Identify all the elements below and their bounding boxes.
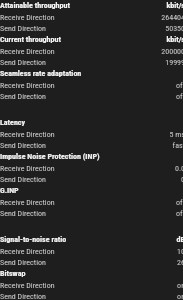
staticText: 0.0 [174, 164, 183, 173]
staticText: Bitswap [0, 269, 26, 278]
staticText: Send Direction [0, 175, 46, 184]
button[interactable]: Receive Direction [0, 12, 183, 23]
button[interactable]: Send Direction [0, 140, 183, 151]
staticText: Send Direction [0, 209, 46, 218]
staticText: Attainable throughput [0, 1, 70, 10]
staticText: on [177, 281, 183, 290]
button[interactable]: Receive Direction [0, 197, 183, 208]
button[interactable]: Receive Direction [0, 280, 183, 291]
button[interactable]: Receive Direction [0, 46, 183, 57]
button[interactable]: Receive Direction [0, 80, 183, 91]
staticText: Current throughput [0, 35, 61, 44]
staticText: 26 [177, 258, 183, 267]
button[interactable]: Receive Direction [0, 163, 183, 174]
button[interactable]: Impulse Noise Protection (INP) [0, 151, 183, 162]
button[interactable]: Signal-to-noise ratio [0, 234, 183, 245]
staticText: Latency [0, 118, 26, 127]
staticText: Receive Direction [0, 164, 55, 173]
staticText: Signal-to-noise ratio [0, 235, 67, 244]
staticText: kbit/s [166, 1, 183, 10]
staticText: Send Direction [0, 141, 46, 150]
button[interactable]: Send Direction [0, 174, 183, 185]
staticText: Receive Direction [0, 13, 55, 22]
button[interactable]: Bitswap [0, 268, 183, 279]
staticText: 200000 [161, 47, 183, 56]
staticText: Send Direction [0, 292, 46, 300]
button[interactable]: Latency [0, 117, 183, 128]
staticText: Send Direction [0, 58, 46, 67]
button[interactable]: Send Direction [0, 23, 183, 34]
staticText: on [177, 292, 183, 300]
button[interactable]: Send Direction [0, 257, 183, 268]
button[interactable]: Current throughput [0, 34, 183, 45]
staticText: Send Direction [0, 24, 46, 33]
staticText: G.INP [0, 186, 19, 195]
staticText: dB [176, 235, 183, 244]
staticText: 0 [181, 175, 183, 184]
staticText: off [175, 198, 183, 207]
staticText: Send Direction [0, 92, 46, 101]
staticText: Receive Direction [0, 130, 55, 139]
staticText: Receive Direction [0, 81, 55, 90]
staticText: Send Direction [0, 258, 46, 267]
button[interactable]: Send Direction [0, 291, 183, 300]
button[interactable]: Send Direction [0, 208, 183, 219]
staticText: off [175, 209, 183, 218]
button[interactable]: Seamless rate adaptation [0, 68, 183, 79]
button[interactable]: Send Direction [0, 57, 183, 68]
staticText: Impulse Noise Protection (INP) [0, 152, 100, 161]
button[interactable]: Receive Direction [0, 246, 183, 257]
staticText: kbit/s [166, 35, 183, 44]
button[interactable]: Send Direction [0, 91, 183, 102]
staticText: Receive Direction [0, 247, 55, 256]
staticText: off [175, 81, 183, 90]
staticText: Receive Direction [0, 281, 55, 290]
button[interactable]: Receive Direction [0, 129, 183, 140]
button[interactable]: G.INP [0, 185, 183, 196]
button[interactable]: Attainable throughput [0, 0, 183, 11]
staticText: 50350 [165, 24, 183, 33]
staticText: off [175, 92, 183, 101]
staticText: 5 ms [169, 130, 183, 139]
staticText: 10 [177, 247, 183, 256]
staticText: fast [172, 141, 183, 150]
staticText: Receive Direction [0, 47, 55, 56]
staticText: 264404 [161, 13, 183, 22]
staticText: Receive Direction [0, 198, 55, 207]
staticText: Seamless rate adaptation [0, 69, 82, 78]
staticText: 19999 [165, 58, 183, 67]
